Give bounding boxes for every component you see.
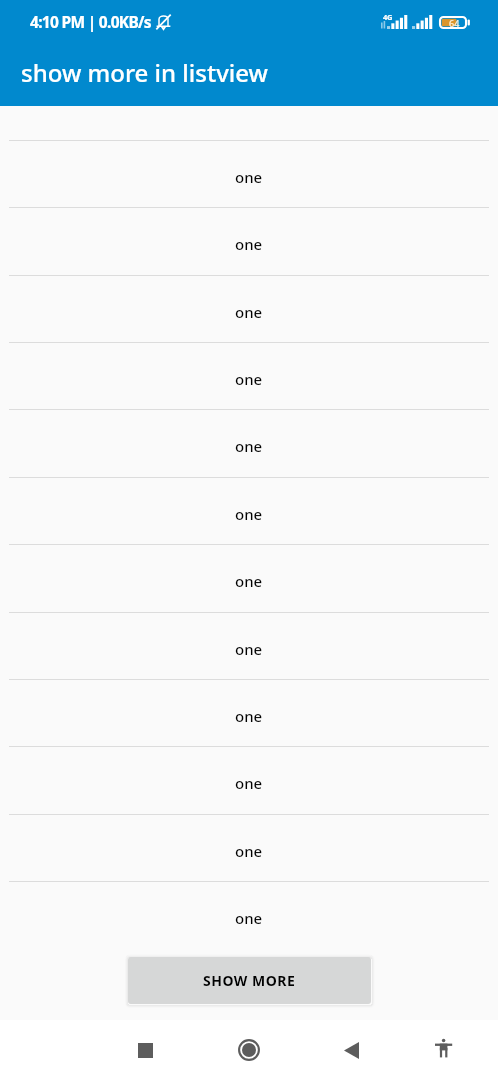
- staticText: 4:10 PM | 0.0KB/s: [30, 11, 151, 32]
- staticText: one: [235, 436, 263, 456]
- button[interactable]: Accessibility: [415, 1020, 471, 1080]
- button[interactable]: one: [0, 746, 498, 813]
- button[interactable]: Home: [221, 1020, 277, 1080]
- button[interactable]: one: [0, 881, 498, 948]
- staticText: one: [235, 302, 263, 322]
- staticText: one: [235, 639, 263, 659]
- button[interactable]: one: [0, 612, 498, 679]
- staticText: 64: [449, 17, 460, 29]
- staticText: one: [235, 841, 263, 861]
- button[interactable]: one: [0, 477, 498, 544]
- button[interactable]: one: [0, 679, 498, 746]
- staticText: one: [235, 908, 263, 928]
- button[interactable]: one: [0, 207, 498, 274]
- staticText: one: [235, 706, 263, 726]
- staticText: one: [235, 504, 263, 524]
- button[interactable]: Back: [323, 1020, 379, 1080]
- staticText: one: [235, 167, 263, 187]
- button[interactable]: one: [0, 140, 498, 207]
- staticText: one: [235, 369, 263, 389]
- staticText: SHOW MORE: [203, 971, 296, 990]
- button[interactable]: one: [0, 544, 498, 611]
- staticText: one: [235, 234, 263, 254]
- button[interactable]: SHOW MORE: [128, 957, 371, 1004]
- button[interactable]: one: [0, 342, 498, 409]
- button[interactable]: Recents: [117, 1020, 173, 1080]
- button[interactable]: one: [0, 814, 498, 881]
- button[interactable]: one: [0, 409, 498, 476]
- staticText: one: [235, 773, 263, 793]
- staticText: 4G: [383, 12, 393, 22]
- button[interactable]: one: [0, 275, 498, 342]
- staticText: one: [235, 571, 263, 591]
- staticText: show more in listview: [21, 56, 268, 89]
